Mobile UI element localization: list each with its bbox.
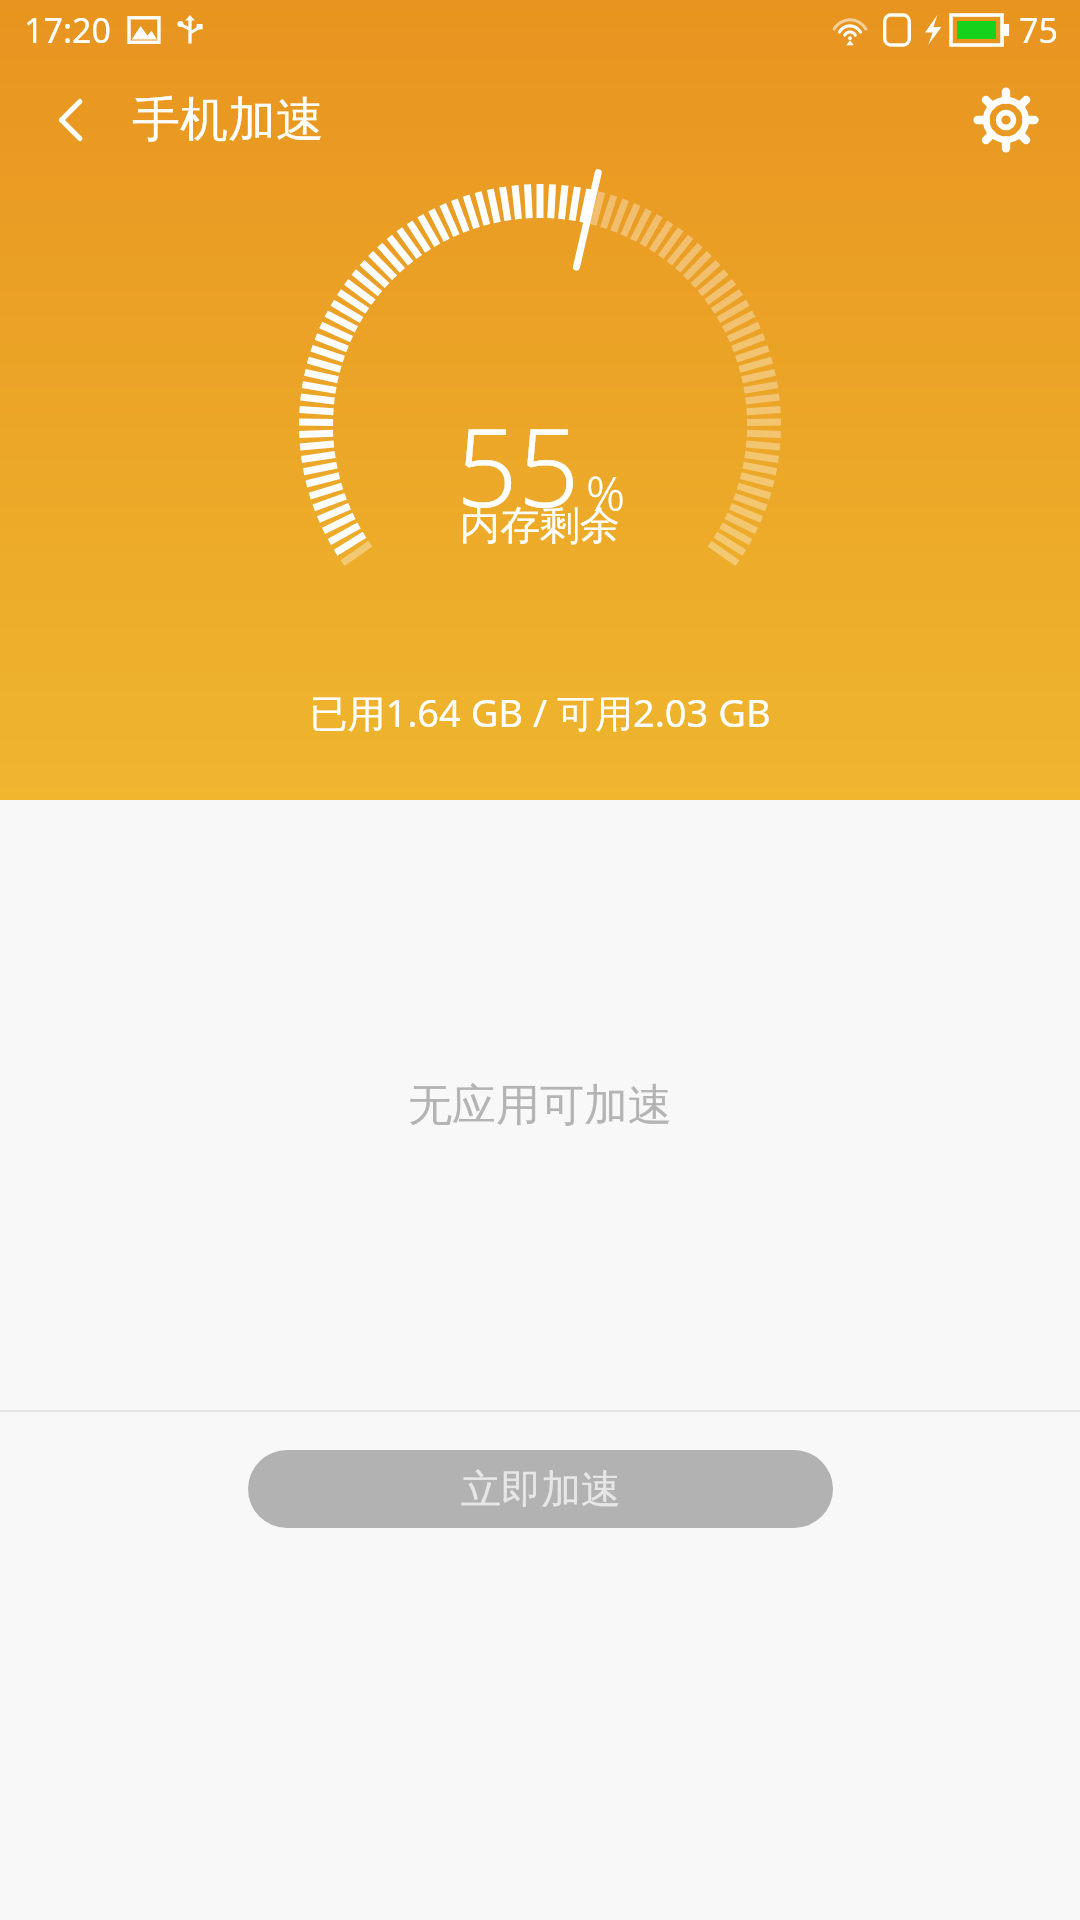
staticText: 内存剩余 — [460, 500, 620, 550]
staticText: 无应用可加速 — [408, 1078, 672, 1133]
button[interactable]: Back — [28, 76, 116, 164]
staticText: 75 — [1019, 7, 1058, 53]
staticText: 立即加速 — [461, 1464, 621, 1514]
staticText: 已用1.64 GB / 可用2.03 GB — [309, 686, 771, 738]
button[interactable]: Settings — [960, 74, 1052, 166]
staticText: 17:20 — [24, 7, 111, 53]
staticText: 55 — [456, 392, 580, 539]
staticText: 手机加速 — [132, 90, 324, 150]
staticText: % — [586, 460, 625, 525]
button[interactable]: 立即加速 — [248, 1450, 833, 1528]
